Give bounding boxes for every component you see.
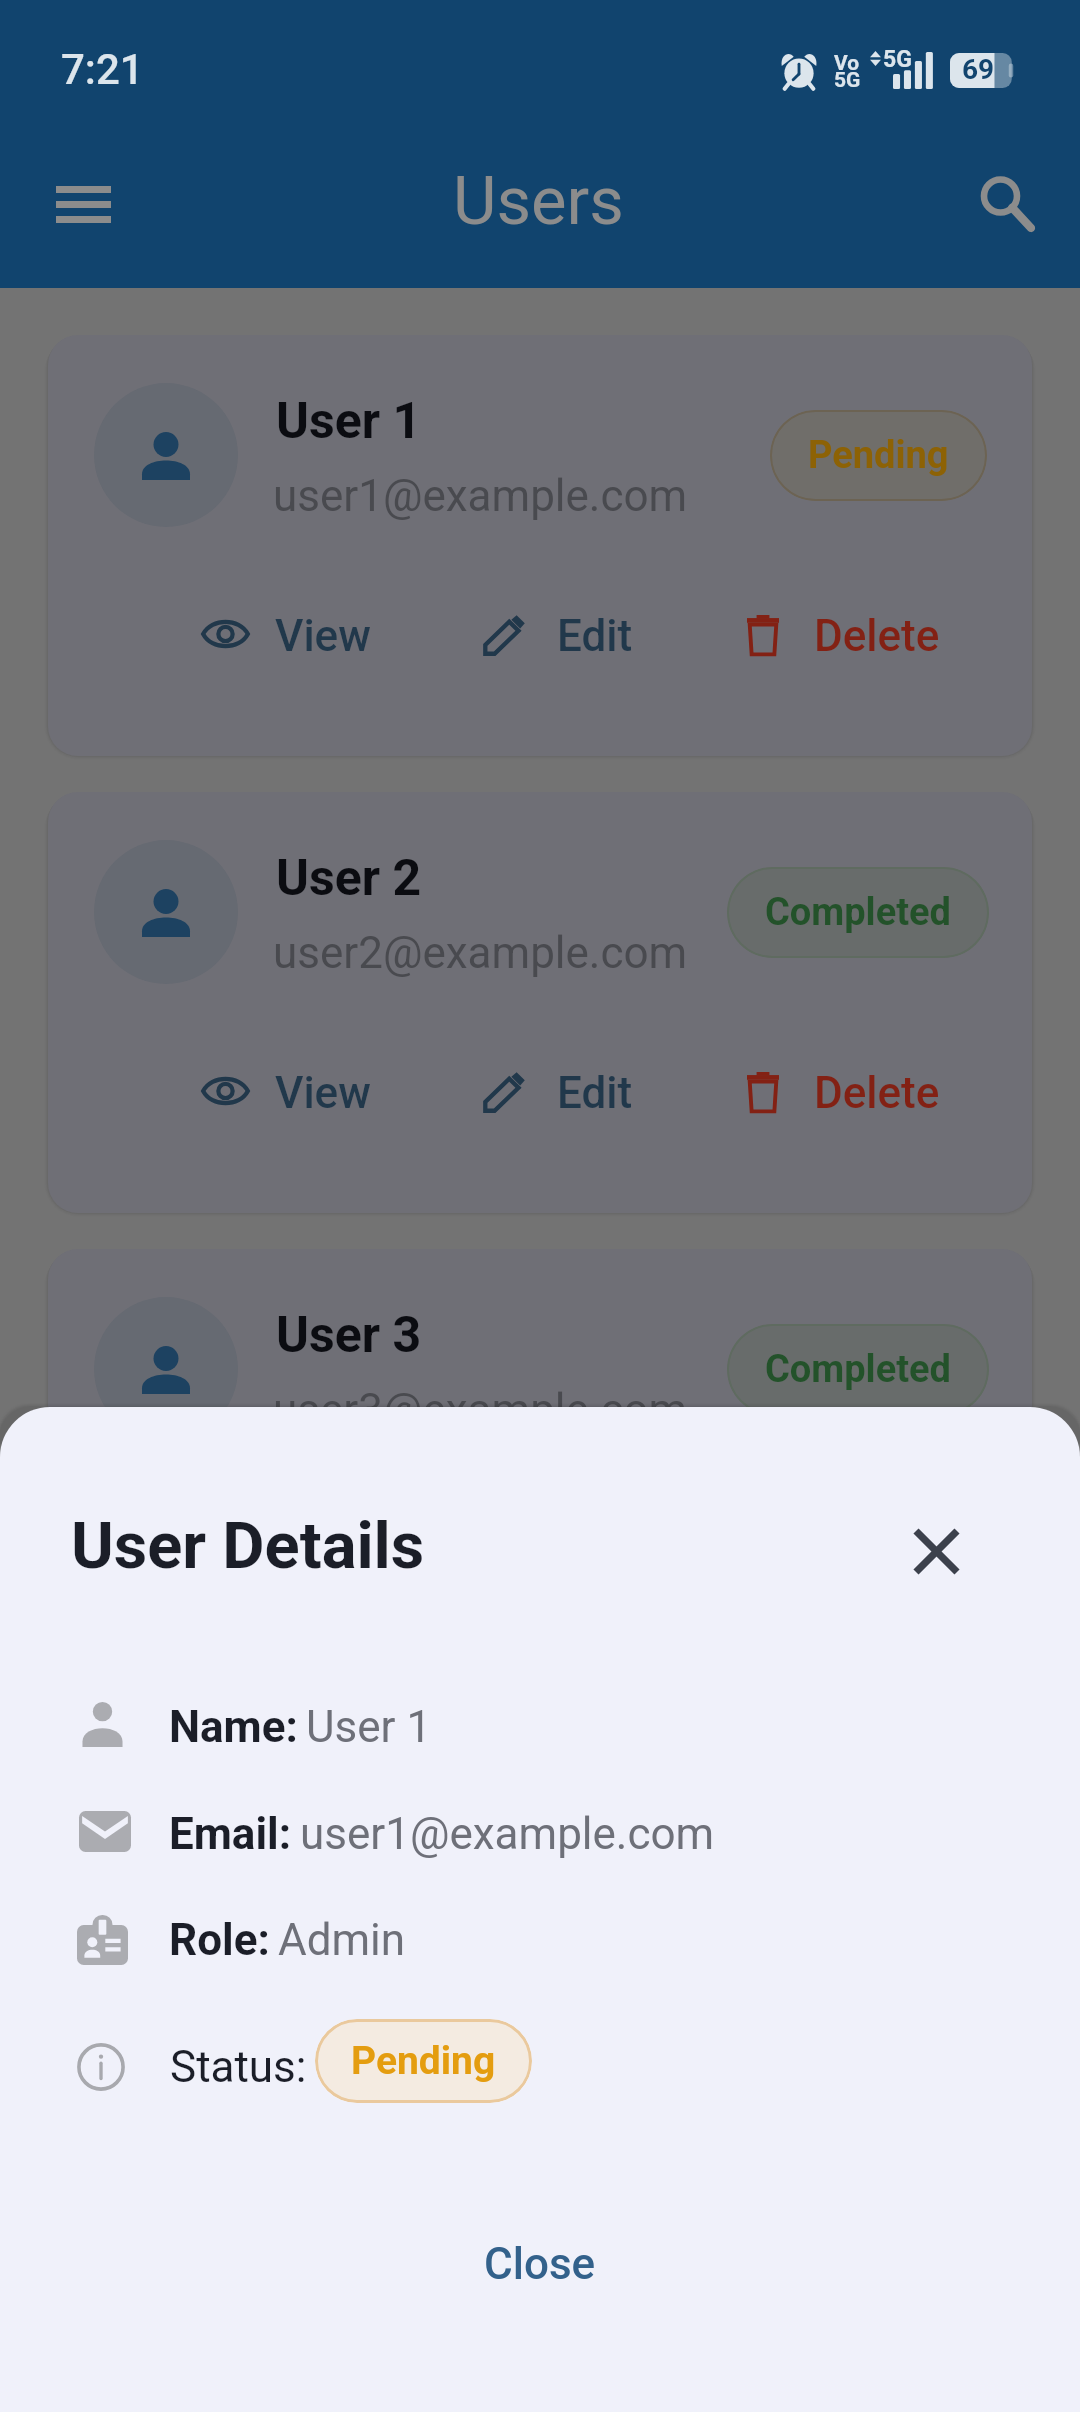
staticText: Edit (557, 1067, 633, 1119)
button[interactable]: Delete (731, 1056, 949, 1129)
staticText: Delete (814, 1067, 940, 1119)
staticText: user1@example.com (300, 1808, 715, 1860)
staticText: View (275, 610, 371, 662)
staticText: Close (484, 2238, 596, 2290)
button[interactable]: User 1 (48, 335, 1032, 756)
button[interactable]: Edit (467, 1056, 644, 1129)
staticText: user2@example.com (273, 927, 688, 979)
staticText: Delete (814, 1524, 940, 1576)
staticText: Pending (808, 433, 949, 478)
staticText: Completed (765, 1347, 951, 1392)
button[interactable]: Close dialog (890, 1505, 982, 1597)
staticText: Completed (765, 890, 951, 935)
staticText: Role: (169, 1914, 270, 1966)
staticText: Edit (557, 610, 633, 662)
staticText: View (275, 1067, 371, 1119)
staticText: View (275, 1524, 371, 1576)
staticText: 5G (834, 68, 861, 93)
staticText: User Details (71, 1508, 425, 1584)
button[interactable]: View (185, 601, 386, 667)
button[interactable]: User 2 (48, 792, 1032, 1213)
staticText: User 3 (276, 1306, 422, 1365)
button[interactable]: Delete (731, 1513, 949, 1586)
staticText: Pending (351, 2038, 496, 2084)
staticText: Status: (170, 2041, 307, 2093)
staticText: Vo (834, 51, 860, 76)
staticText: Name: (169, 1701, 298, 1753)
staticText: Delete (814, 610, 940, 662)
staticText: 5G (883, 46, 912, 73)
button[interactable]: Edit (467, 599, 644, 672)
button[interactable]: Open navigation menu (36, 164, 131, 244)
button[interactable]: View (185, 1515, 386, 1581)
staticText: user3@example.com (273, 1384, 688, 1436)
staticText: 69 (962, 53, 995, 86)
staticText: User 1 (306, 1701, 432, 1753)
staticText: Email: (169, 1808, 292, 1860)
button[interactable]: User 3 (48, 1249, 1032, 1670)
button[interactable]: Delete (731, 599, 949, 672)
button[interactable]: Completed (727, 1324, 989, 1415)
button[interactable]: Completed (727, 867, 989, 958)
button[interactable]: Search (960, 154, 1056, 250)
staticText: 7:21 (61, 45, 144, 94)
staticText: User 2 (276, 849, 422, 908)
button[interactable]: View (185, 1058, 386, 1124)
staticText: Admin (278, 1914, 406, 1966)
button[interactable]: Pending (770, 410, 987, 501)
button[interactable]: Close (450, 2218, 630, 2310)
staticText: user1@example.com (273, 470, 688, 522)
staticText: User 1 (276, 392, 422, 451)
staticText: Users (453, 162, 624, 241)
